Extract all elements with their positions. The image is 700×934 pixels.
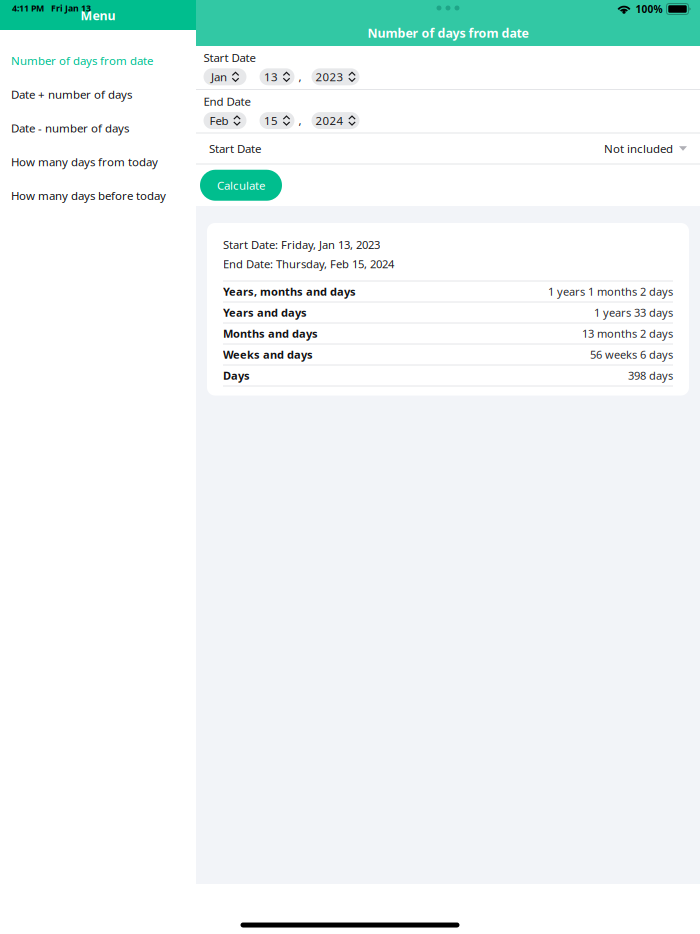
staticText: Start Date xyxy=(203,50,255,65)
button[interactable]: Number of days from date xyxy=(0,44,196,77)
staticText: End Date: Thursday, Feb 15, 2024 xyxy=(223,256,394,272)
staticText: 1 years 33 days xyxy=(594,305,673,320)
button[interactable]: 2024 xyxy=(311,112,359,129)
button[interactable]: Calculate xyxy=(200,170,282,201)
staticText: 4:11 PM xyxy=(12,2,44,14)
staticText: Jan xyxy=(211,69,227,85)
staticText: Feb xyxy=(209,113,228,128)
staticText: End Date xyxy=(203,93,250,109)
button[interactable]: How many days from today xyxy=(0,145,196,179)
staticText: 2024 xyxy=(315,113,343,128)
button[interactable]: 2023 xyxy=(311,68,359,85)
staticText: Date + number of days xyxy=(11,86,132,102)
button[interactable]: Feb xyxy=(203,112,246,129)
staticText: 100% xyxy=(635,2,662,16)
button[interactable]: How many days before today xyxy=(0,179,196,212)
staticText: 398 days xyxy=(628,368,673,383)
staticText: Calculate xyxy=(217,177,265,193)
button[interactable]: Date + number of days xyxy=(0,77,196,111)
staticText: Start Date: Friday, Jan 13, 2023 xyxy=(223,237,380,252)
staticText: 56 weeks 6 days xyxy=(590,347,673,362)
staticText: , xyxy=(298,113,301,128)
staticText: Months and days xyxy=(223,326,318,341)
staticText: Menu xyxy=(80,7,115,24)
staticText: 15 xyxy=(264,113,278,128)
button[interactable]: 15 xyxy=(259,112,294,129)
staticText: Fri Jan 13 xyxy=(51,2,91,14)
button[interactable]: Jan xyxy=(203,68,246,85)
staticText: 2023 xyxy=(315,69,343,85)
staticText: Weeks and days xyxy=(223,347,313,362)
staticText: How many days before today xyxy=(11,188,166,203)
staticText: Start Date xyxy=(209,141,261,156)
staticText: Number of days from date xyxy=(367,25,528,41)
staticText: Number of days from date xyxy=(11,53,153,68)
button[interactable]: 13 xyxy=(259,68,294,85)
button[interactable]: Date - number of days xyxy=(0,111,196,145)
staticText: 13 months 2 days xyxy=(582,326,673,341)
staticText: Days xyxy=(223,368,250,383)
staticText: , xyxy=(298,69,301,85)
staticText: Years, months and days xyxy=(223,284,356,299)
staticText: 1 years 1 months 2 days xyxy=(548,284,673,299)
staticText: How many days from today xyxy=(11,154,158,169)
staticText: Not included xyxy=(604,141,673,156)
staticText: Date - number of days xyxy=(11,120,129,136)
staticText: 13 xyxy=(264,69,278,85)
button[interactable]: Start Date xyxy=(196,133,700,163)
staticText: Years and days xyxy=(223,305,307,320)
